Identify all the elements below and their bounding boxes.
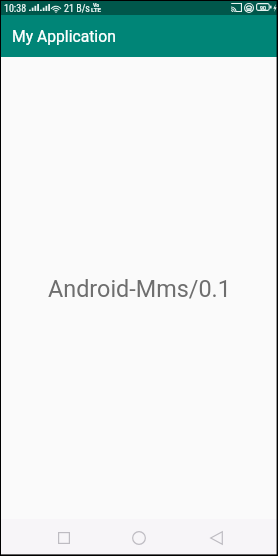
button[interactable]: Back xyxy=(194,519,239,556)
staticText: 10:38 xyxy=(4,3,27,15)
staticText: My Application xyxy=(12,27,116,45)
staticText: LTE xyxy=(91,6,102,13)
staticText: Vo xyxy=(93,2,100,8)
button[interactable]: Home xyxy=(116,519,161,556)
button[interactable]: Recent apps xyxy=(41,519,86,556)
staticText: 21 B/s xyxy=(64,3,90,15)
staticText: 90 xyxy=(260,4,266,11)
staticText: Android-Mms/0.1 xyxy=(48,275,231,302)
